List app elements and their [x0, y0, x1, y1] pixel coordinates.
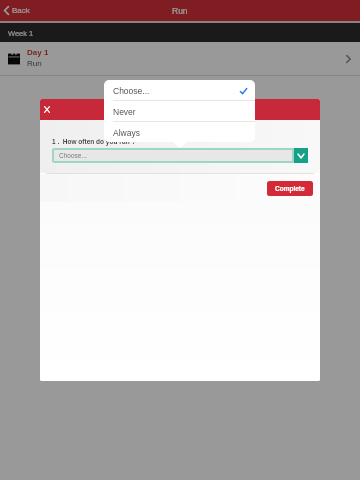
staticText: Run: [27, 59, 42, 68]
button[interactable]: Never: [104, 101, 255, 121]
staticText: Run: [172, 6, 188, 15]
button[interactable]: Open choices: [294, 148, 308, 163]
button[interactable]: Close: [41, 103, 53, 116]
staticText: Always: [113, 128, 140, 137]
button[interactable]: Day 1: [0, 42, 360, 75]
staticText: 1 . How often do you run ?: [52, 138, 136, 145]
staticText: Back: [12, 6, 30, 15]
button[interactable]: Choose...: [54, 150, 292, 161]
staticText: Choose...: [59, 152, 87, 159]
staticText: Complete: [275, 185, 305, 192]
button[interactable]: Complete: [267, 181, 313, 196]
staticText: Day 1: [27, 48, 49, 57]
button[interactable]: Choose...: [104, 80, 255, 100]
staticText: Choose...: [113, 86, 150, 95]
staticText: Never: [113, 107, 136, 116]
button[interactable]: Always: [104, 122, 255, 142]
staticText: Week 1: [8, 29, 34, 37]
button[interactable]: Back: [0, 3, 34, 18]
